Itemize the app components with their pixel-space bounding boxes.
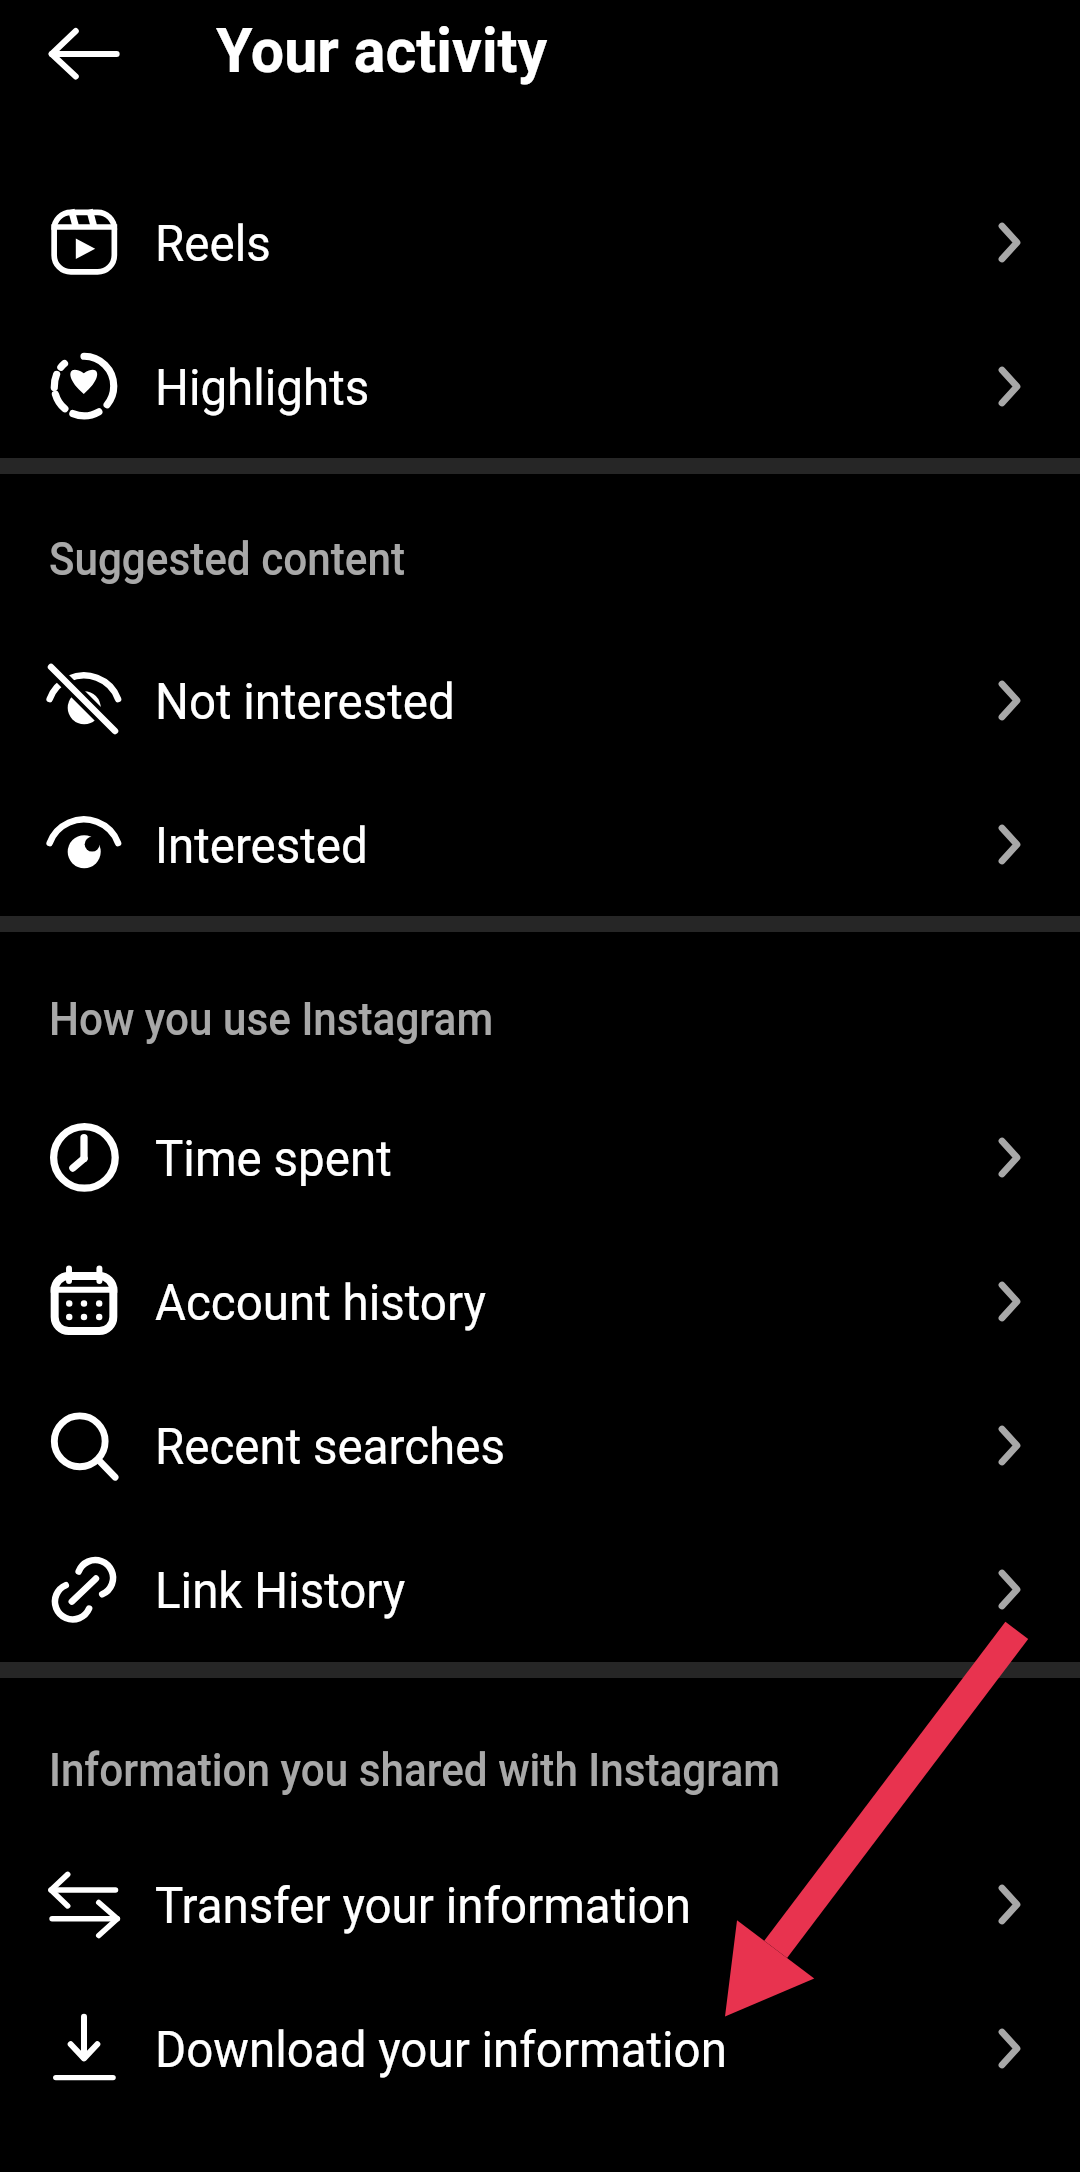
button[interactable]: Back [48, 18, 120, 90]
button[interactable]: Transfer your information [0, 1832, 1080, 1976]
staticText: Account history [155, 1274, 486, 1333]
staticText: How you use Instagram [49, 992, 494, 1046]
staticText: Download your information [155, 2021, 728, 2080]
button[interactable]: Link History [0, 1517, 1080, 1661]
button[interactable]: Highlights [0, 314, 1080, 458]
staticText: Transfer your information [155, 1877, 692, 1936]
staticText: Not interested [155, 673, 455, 732]
staticText: Recent searches [155, 1418, 505, 1477]
button[interactable]: Interested [0, 772, 1080, 916]
staticText: Reels [155, 215, 271, 274]
button[interactable]: Recent searches [0, 1373, 1080, 1517]
button[interactable]: Download your information [0, 1976, 1080, 2120]
staticText: Suggested content [49, 532, 406, 586]
button[interactable]: Account history [0, 1229, 1080, 1373]
staticText: Highlights [155, 359, 370, 418]
button[interactable]: Time spent [0, 1085, 1080, 1229]
staticText: Time spent [155, 1130, 392, 1189]
staticText: Link History [155, 1562, 406, 1621]
button[interactable]: Reels [0, 170, 1080, 314]
staticText: Interested [155, 817, 368, 876]
staticText: Information you shared with Instagram [49, 1743, 781, 1797]
button[interactable]: Not interested [0, 628, 1080, 772]
staticText: Your activity [216, 15, 548, 86]
